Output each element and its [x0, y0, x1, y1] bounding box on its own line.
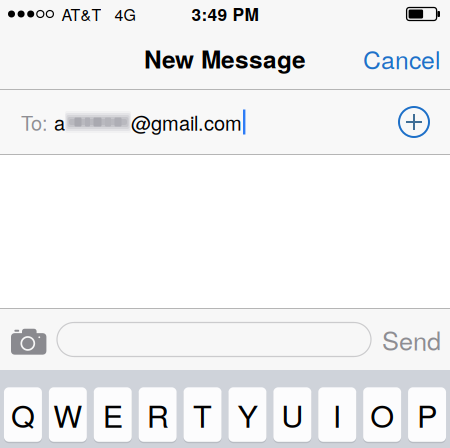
button[interactable]: Send	[371, 309, 450, 370]
staticText: Cancel	[363, 41, 440, 76]
button[interactable]: Y	[228, 387, 266, 442]
staticText: @gmail.com	[131, 108, 242, 136]
button[interactable]: O	[363, 387, 401, 442]
staticText: U	[281, 393, 303, 436]
button[interactable]: U	[273, 387, 311, 442]
staticText: P	[417, 393, 437, 436]
staticText: Y	[237, 393, 257, 436]
staticText: 4G	[114, 2, 135, 25]
staticText: New Message	[144, 41, 306, 76]
button[interactable]: P	[408, 387, 446, 442]
button[interactable]: Take photo or video	[11, 309, 57, 370]
staticText: AT&T	[61, 2, 101, 25]
button[interactable]: Cancel	[351, 28, 450, 89]
staticText: E	[103, 393, 123, 436]
staticText: Q	[11, 393, 35, 436]
button[interactable]: E	[94, 387, 132, 442]
button[interactable]: I	[318, 387, 356, 442]
button[interactable]: R	[139, 387, 177, 442]
staticText: a	[48, 108, 65, 136]
button[interactable]: Q	[4, 387, 42, 442]
staticText: To:	[21, 108, 48, 136]
staticText: R	[147, 393, 169, 436]
staticText: W	[53, 393, 82, 436]
button[interactable]: Add contact	[392, 97, 436, 147]
staticText: Send	[382, 321, 441, 358]
staticText: 3:49 PM	[191, 2, 258, 26]
button[interactable]: T	[183, 387, 221, 442]
button[interactable]: W	[49, 387, 87, 442]
staticText: T	[193, 393, 212, 436]
staticText: I	[333, 393, 342, 436]
staticText: O	[370, 393, 394, 436]
